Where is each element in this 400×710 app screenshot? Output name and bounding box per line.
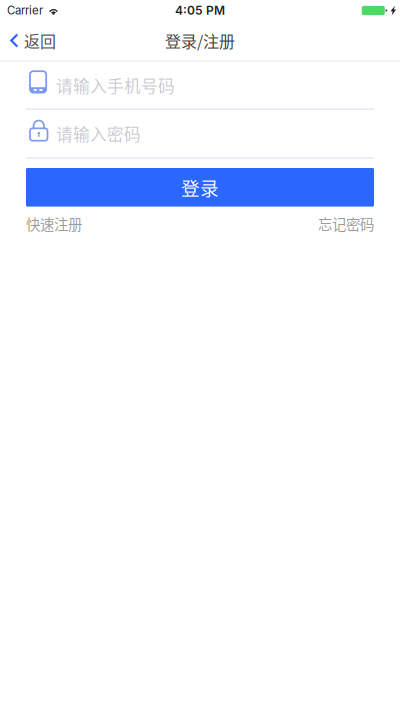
button[interactable]: 忘记密码 — [318, 213, 374, 234]
staticText: 登录 — [181, 174, 219, 201]
staticText: 4:05 PM — [175, 3, 225, 18]
staticText: 返回 — [24, 29, 56, 52]
staticText: 快速注册 — [26, 213, 82, 234]
staticText: 请输入密码 — [56, 121, 141, 146]
button[interactable]: 返回 — [0, 20, 68, 60]
staticText: 忘记密码 — [318, 213, 374, 234]
staticText: Carrier — [7, 4, 43, 17]
staticText: 登录/注册 — [165, 29, 235, 52]
button[interactable]: 登录 — [26, 168, 374, 207]
staticText: 请输入手机号码 — [56, 73, 175, 97]
button[interactable]: 快速注册 — [26, 213, 82, 234]
